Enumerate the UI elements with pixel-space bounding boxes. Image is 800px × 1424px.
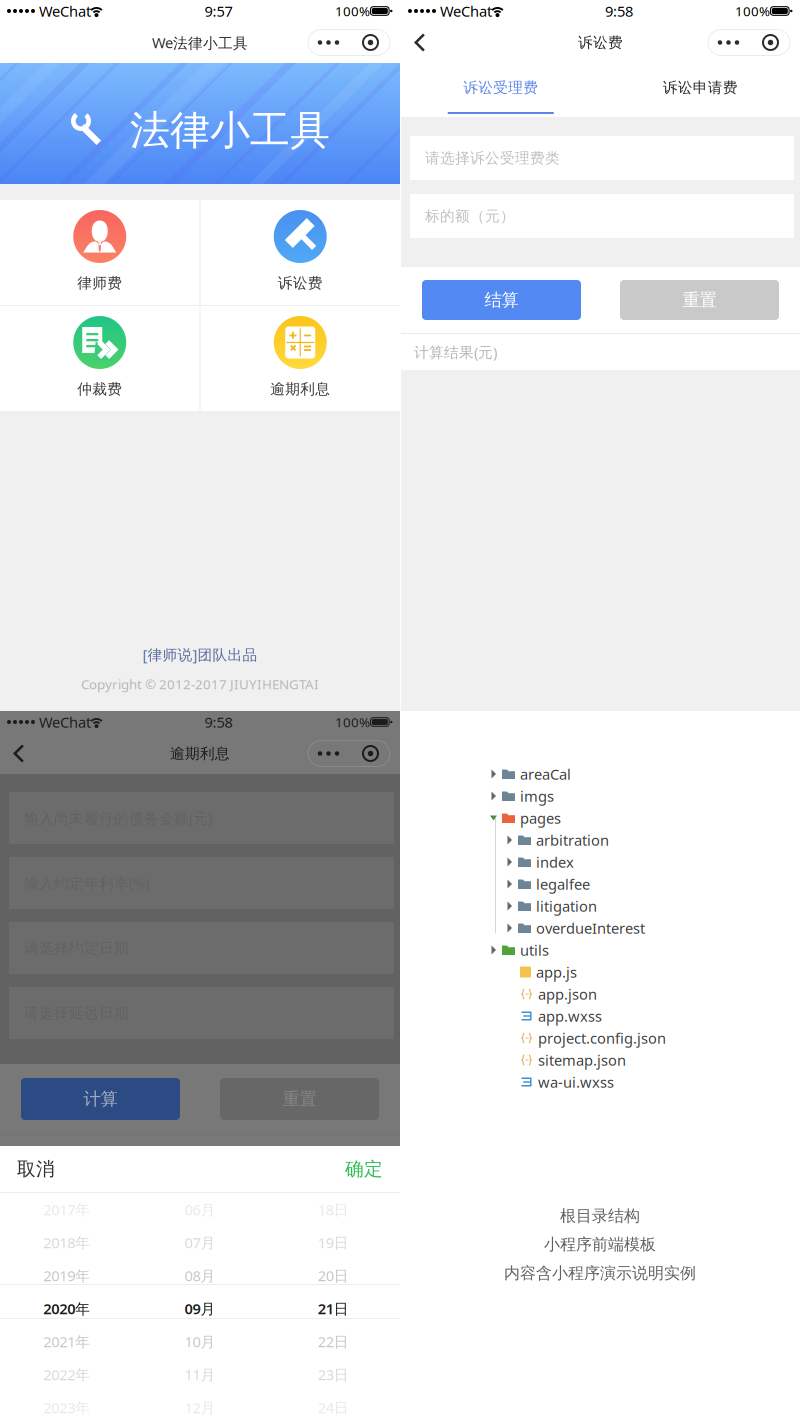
button[interactable]: project.config.json (490, 1027, 800, 1049)
button[interactable]: litigation (490, 895, 800, 917)
staticText: index (536, 852, 574, 872)
staticText: 小程序前端模板 (544, 1235, 656, 1254)
staticText: 重置 (282, 1088, 316, 1110)
button[interactable]: More options (308, 29, 400, 55)
staticText: 计算结果(元) (13, 1143, 96, 1163)
staticText: 仲裁费 (77, 380, 122, 398)
button[interactable]: overdueInterest (490, 917, 800, 939)
staticText: app.wxss (538, 1006, 602, 1026)
staticText: WeChat (35, 1, 91, 21)
button[interactable]: 标的额（元） (410, 194, 794, 238)
staticText: 9:57 (204, 1, 232, 21)
button[interactable]: More options (308, 740, 400, 766)
button[interactable]: 诉讼申请费 (600, 63, 800, 117)
button[interactable]: index (490, 851, 800, 873)
button[interactable]: 请选择诉公受理费类 (410, 136, 794, 180)
staticText: 根目录结构 (560, 1206, 640, 1226)
staticText: 输入约定年利率(%) (24, 873, 149, 893)
staticText: 法律小工具 (130, 106, 330, 155)
button[interactable]: More options (708, 29, 800, 55)
button[interactable]: app.wxss (490, 1005, 800, 1027)
button[interactable]: 律师费 (0, 200, 199, 305)
button[interactable]: utils (490, 939, 800, 961)
button[interactable]: 重置 (620, 280, 779, 320)
staticText: WeChat (35, 712, 91, 732)
staticText: WeChat (436, 1, 492, 21)
staticText: 输入尚未履行的债务金额(元) (24, 808, 212, 828)
staticText: 2018年 (43, 1233, 90, 1252)
button[interactable]: app.json (490, 983, 800, 1005)
button[interactable]: 诉讼费 (200, 200, 400, 305)
staticText: 100% (335, 713, 370, 731)
button[interactable]: Back (0, 733, 35, 774)
button[interactable]: 结算 (422, 280, 581, 320)
button[interactable]: 重置 (220, 1078, 379, 1120)
button[interactable]: 诉讼受理费 (401, 63, 600, 117)
staticText: 9:58 (204, 712, 232, 732)
staticText: 09月 (184, 1299, 215, 1318)
staticText: 诉讼费 (578, 33, 623, 51)
staticText: arbitration (536, 830, 609, 850)
button[interactable]: 确定 (345, 1146, 400, 1192)
button[interactable]: 仲裁费 (0, 306, 199, 411)
staticText: areaCal (520, 764, 571, 784)
staticText: project.config.json (538, 1028, 666, 1048)
staticText: 100% (735, 2, 770, 20)
staticText: pages (520, 808, 561, 828)
staticText: 取消 (17, 1157, 55, 1180)
button[interactable]: 逾期利息 (200, 306, 400, 411)
staticText: 24日 (318, 1398, 349, 1417)
staticText: Copyright © 2012-2017 JIUYIHENGTAI (81, 675, 319, 693)
staticText: 12月 (184, 1398, 215, 1417)
staticText: 重置 (682, 289, 716, 311)
staticText: 22日 (318, 1332, 349, 1351)
staticText: overdueInterest (536, 918, 645, 938)
button[interactable]: Back (401, 22, 436, 63)
staticText: 请选择诉公受理费类 (425, 149, 560, 167)
staticText: 确定 (345, 1157, 383, 1180)
staticText: 100% (335, 2, 370, 20)
staticText: 律师费 (77, 274, 122, 292)
button[interactable]: 计算 (21, 1078, 180, 1120)
button[interactable]: sitemap.json (490, 1049, 800, 1071)
staticText: 19日 (318, 1233, 349, 1252)
staticText: litigation (536, 896, 597, 916)
staticText: 请选择延迟日期 (24, 1004, 129, 1022)
staticText: imgs (520, 786, 554, 806)
button[interactable]: app.js (490, 961, 800, 983)
button[interactable]: imgs (490, 785, 800, 807)
staticText: 08月 (184, 1266, 215, 1285)
staticText: 18日 (318, 1200, 349, 1219)
button[interactable]: arbitration (490, 829, 800, 851)
staticText: 请选择约定日期 (24, 939, 129, 957)
staticText: 23日 (318, 1365, 349, 1384)
staticText: We法律小工具 (152, 33, 248, 52)
staticText: [律师说]团队出品 (142, 645, 257, 664)
staticText: 9:58 (605, 1, 633, 21)
button[interactable]: 取消 (0, 1146, 55, 1192)
staticText: 计算 (83, 1088, 117, 1110)
staticText: 2017年 (43, 1200, 90, 1219)
staticText: 2021年 (43, 1332, 90, 1351)
staticText: 11月 (184, 1365, 215, 1384)
staticText: 2020年 (43, 1299, 90, 1318)
staticText: 10月 (184, 1332, 215, 1351)
staticText: 逾期利息 (170, 744, 230, 762)
staticText: app.js (536, 962, 577, 982)
staticText: 诉讼费 (278, 274, 323, 292)
staticText: 20日 (318, 1266, 349, 1285)
staticText: 诉讼受理费 (463, 78, 538, 96)
staticText: app.json (538, 984, 597, 1004)
button[interactable]: wa-ui.wxss (490, 1071, 800, 1093)
staticText: 标的额（元） (425, 207, 515, 225)
button[interactable]: pages (490, 807, 800, 829)
button[interactable]: legalfee (490, 873, 800, 895)
staticText: 2023年 (43, 1398, 90, 1417)
button[interactable]: areaCal (490, 763, 800, 785)
staticText: 2022年 (43, 1365, 90, 1384)
staticText: 内容含小程序演示说明实例 (504, 1263, 696, 1283)
staticText: 诉讼申请费 (663, 78, 738, 96)
staticText: 06月 (184, 1200, 215, 1219)
staticText: 结算 (484, 289, 518, 311)
staticText: utils (520, 940, 549, 960)
